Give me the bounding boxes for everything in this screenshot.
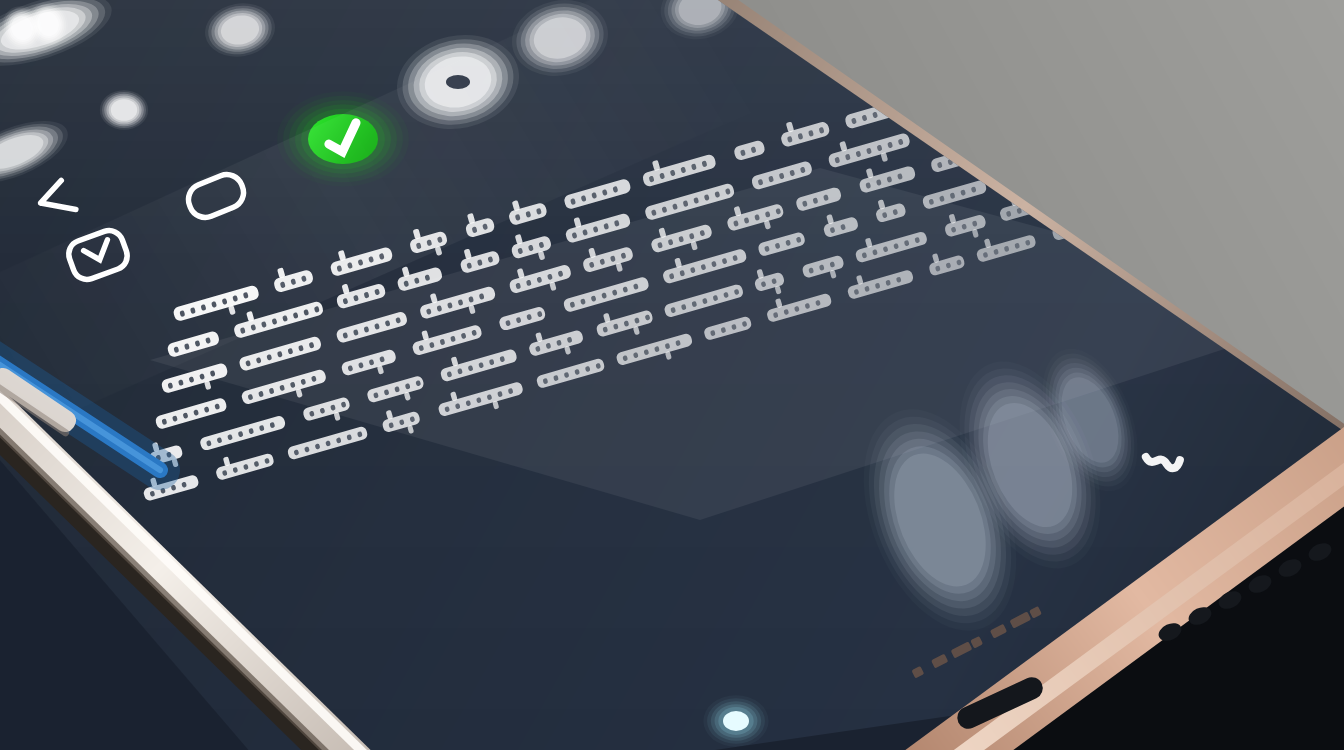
button[interactable]: Phone showing confirmation screen: [0, 0, 1344, 750]
